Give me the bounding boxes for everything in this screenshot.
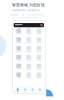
- button[interactable]: [14, 55, 23, 62]
- button[interactable]: [14, 46, 23, 54]
- button[interactable]: [14, 72, 23, 80]
- button[interactable]: [24, 55, 33, 62]
- button[interactable]: Categories: [21, 87, 29, 92]
- button[interactable]: [24, 28, 33, 36]
- button[interactable]: [34, 46, 43, 54]
- staticText: 助力门店数字化升级: [20, 17, 38, 19]
- button[interactable]: [14, 64, 23, 71]
- button[interactable]: [24, 46, 33, 54]
- staticText: 全渠道数字零售一体化服务平台: [12, 9, 40, 12]
- button[interactable]: Profile: [36, 87, 44, 92]
- button[interactable]: [34, 64, 43, 71]
- button[interactable]: [34, 37, 43, 45]
- staticText: 智慧商城 为您好送: [12, 3, 45, 7]
- button[interactable]: [24, 37, 33, 45]
- button[interactable]: [34, 72, 43, 80]
- button[interactable]: [34, 55, 43, 62]
- staticText: 覆盖商品、订单、会员与营销全链能力: [11, 14, 45, 16]
- button[interactable]: [34, 28, 43, 36]
- button[interactable]: Home: [14, 87, 21, 92]
- button[interactable]: [24, 72, 33, 80]
- button[interactable]: [24, 64, 33, 71]
- button[interactable]: Cart: [29, 87, 36, 92]
- button[interactable]: [14, 28, 23, 36]
- button[interactable]: [14, 37, 23, 45]
